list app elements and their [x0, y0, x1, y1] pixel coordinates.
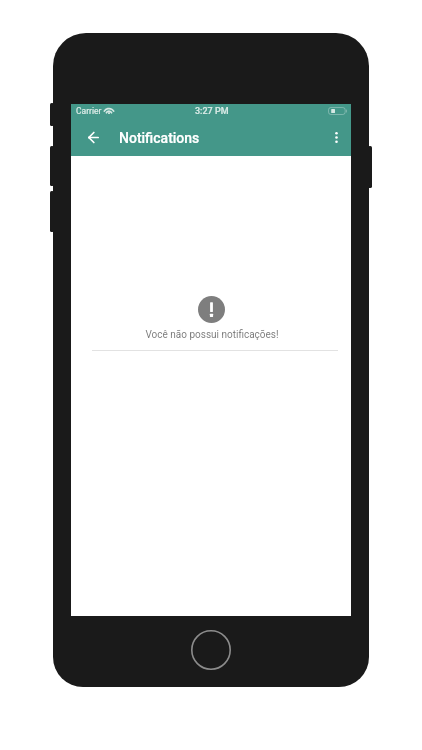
button[interactable]: More options	[322, 124, 350, 152]
staticText: Você não possui notificações!	[145, 329, 279, 341]
staticText: Notifications	[119, 130, 200, 146]
staticText: 3:27 PM	[195, 106, 229, 117]
staticText: Carrier	[76, 106, 102, 116]
button[interactable]: Back	[78, 123, 108, 153]
